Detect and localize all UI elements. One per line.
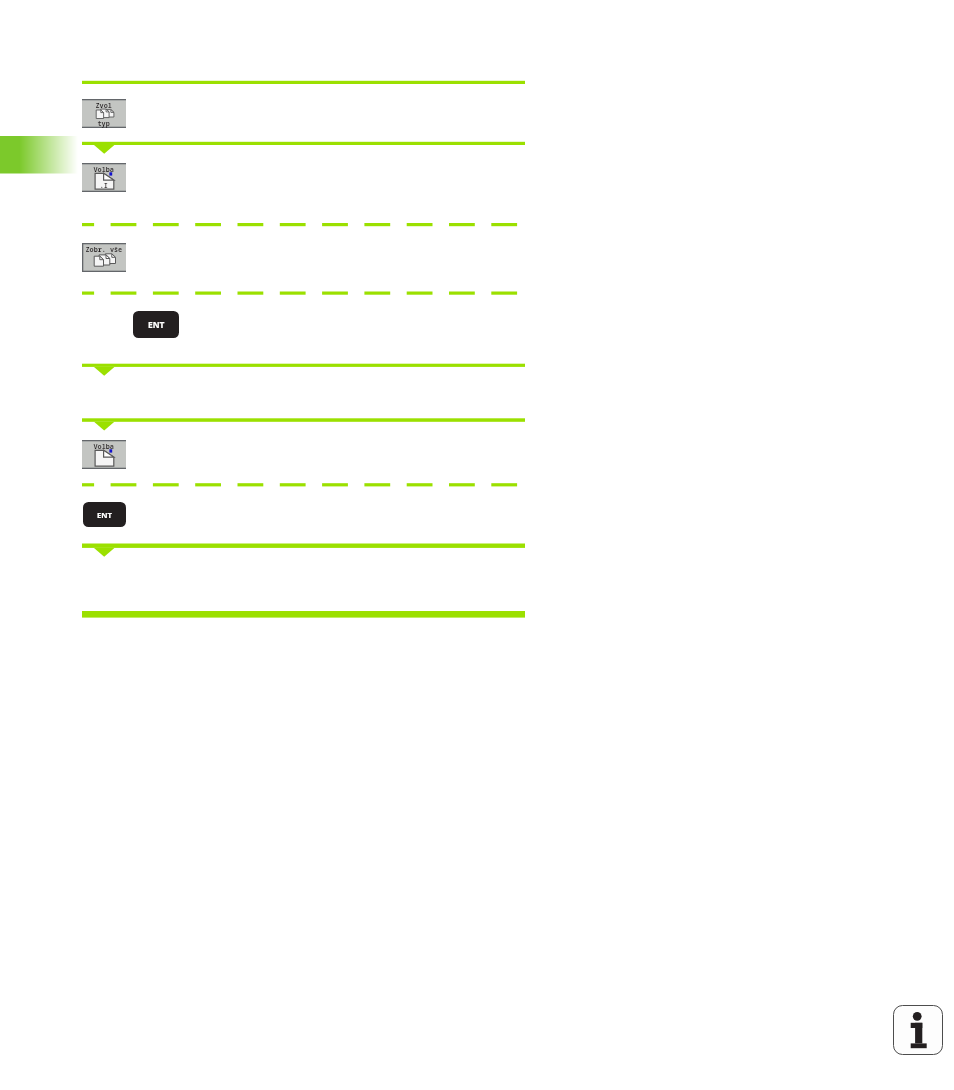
staticText: ENT bbox=[148, 319, 165, 330]
button[interactable]: ENT bbox=[133, 311, 179, 338]
button[interactable]: Volba bbox=[82, 440, 126, 469]
button[interactable]: ENT bbox=[83, 502, 126, 527]
button[interactable]: Zobr. vše bbox=[82, 243, 126, 272]
staticText: ENT bbox=[97, 510, 112, 520]
button[interactable]: Info bbox=[893, 1005, 943, 1055]
button[interactable]: Zvol bbox=[82, 99, 126, 128]
button[interactable]: Volba bbox=[82, 163, 126, 192]
